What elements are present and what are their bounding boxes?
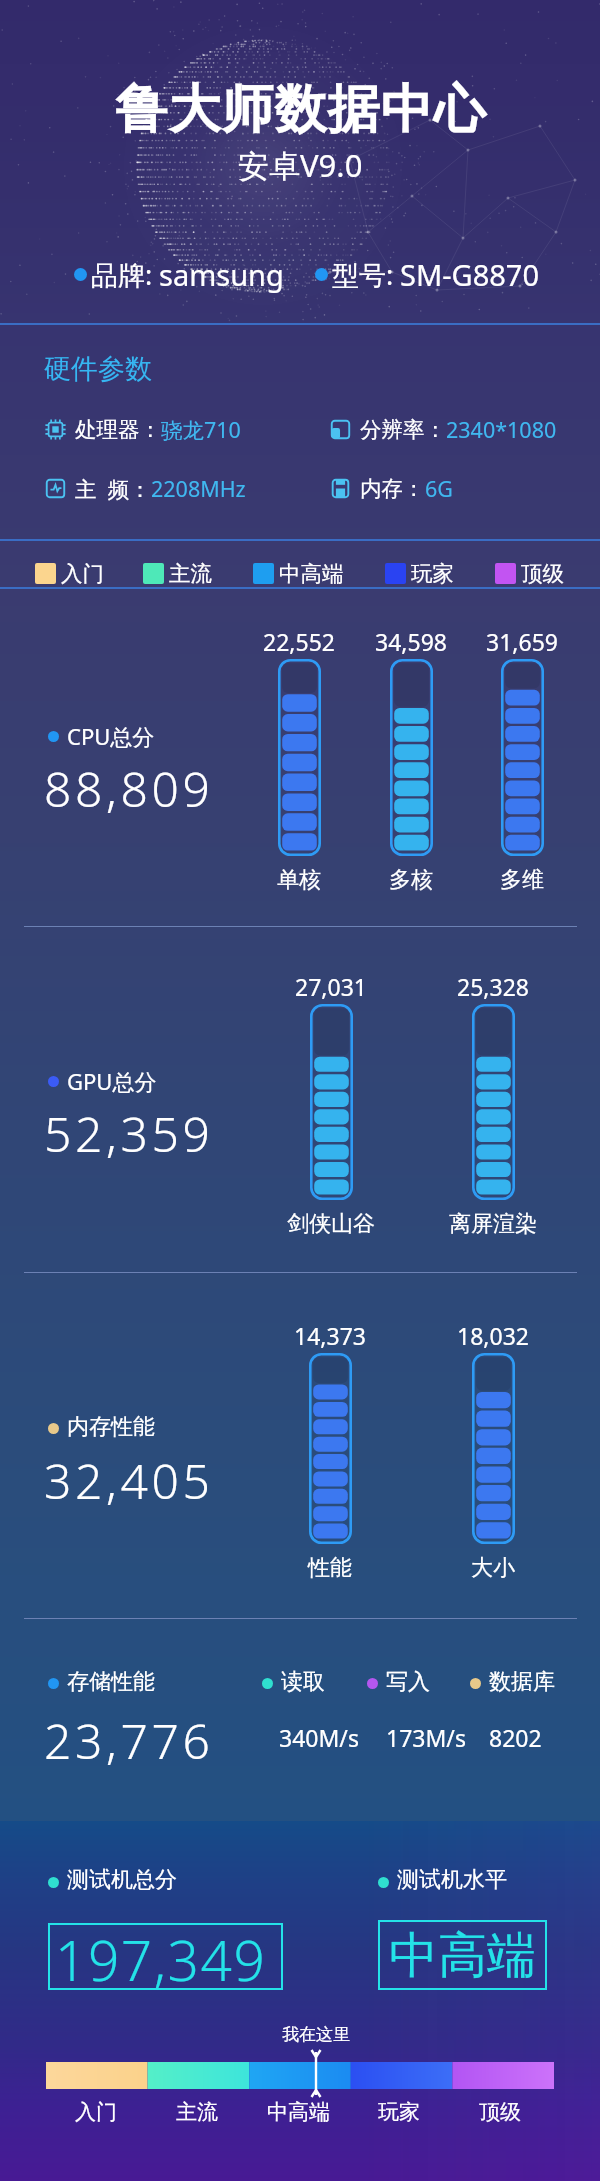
staticText: 中高端	[389, 1925, 536, 1987]
staticText: 主流	[169, 560, 212, 587]
staticText: 6G	[425, 474, 453, 503]
staticText: 340M/s	[279, 1722, 359, 1753]
staticText: 34,598	[375, 626, 447, 657]
staticText: 2208MHz	[151, 474, 246, 503]
staticText: 我在这里	[282, 2024, 350, 2045]
staticText: 测试机水平	[397, 1866, 507, 1894]
staticText: 8202	[489, 1722, 542, 1753]
staticText: 骁龙710	[161, 415, 241, 444]
staticText: 18,032	[457, 1320, 529, 1351]
staticText: CPU总分	[67, 721, 155, 751]
staticText: 品牌:	[91, 256, 153, 293]
staticText: 中高端	[279, 560, 344, 587]
staticText: 单核	[277, 866, 321, 894]
staticText: 剑侠山谷	[287, 1210, 375, 1238]
staticText: 197,349	[55, 1922, 267, 1989]
staticText: 14,373	[294, 1320, 366, 1351]
staticText: 硬件参数	[44, 352, 152, 386]
staticText: 主 频：	[75, 474, 151, 503]
staticText: 52,359	[44, 1101, 214, 1166]
staticText: 大小	[471, 1554, 515, 1582]
staticText: 测试机总分	[67, 1866, 177, 1894]
staticText: 22,552	[263, 626, 335, 657]
staticText: 分辨率：	[360, 416, 446, 443]
staticText: 玩家	[378, 2099, 420, 2125]
staticText: 数据库	[489, 1668, 555, 1696]
staticText: 32,405	[44, 1448, 214, 1513]
staticText: 多维	[500, 866, 544, 894]
staticText: 主流	[176, 2099, 218, 2125]
staticText: SM-G8870	[400, 255, 540, 294]
staticText: 多核	[389, 866, 433, 894]
staticText: samsung	[159, 255, 284, 294]
staticText: 25,328	[457, 971, 529, 1002]
staticText: 安卓V9.0	[238, 144, 363, 186]
staticText: 写入	[386, 1668, 430, 1696]
staticText: 读取	[281, 1668, 325, 1696]
staticText: GPU总分	[67, 1066, 157, 1096]
staticText: 入门	[61, 560, 104, 587]
staticText: 173M/s	[386, 1722, 466, 1753]
staticText: 鲁大师数据中心	[115, 77, 486, 143]
staticText: 31,659	[486, 626, 558, 657]
staticText: 27,031	[295, 971, 367, 1002]
staticText: 性能	[308, 1554, 352, 1582]
staticText: 处理器：	[75, 416, 161, 443]
staticText: 玩家	[411, 560, 454, 587]
staticText: 入门	[75, 2099, 117, 2125]
staticText: 存储性能	[67, 1668, 155, 1696]
staticText: 23,776	[44, 1708, 214, 1773]
staticText: 2340*1080	[446, 415, 557, 444]
staticText: 型号:	[332, 256, 394, 293]
staticText: 顶级	[479, 2099, 521, 2125]
staticText: 内存性能	[67, 1413, 155, 1441]
staticText: 顶级	[521, 560, 564, 587]
staticText: 88,809	[44, 756, 214, 821]
staticText: 内存：	[360, 475, 425, 502]
staticText: 离屏渲染	[449, 1210, 537, 1238]
staticText: 中高端	[267, 2099, 330, 2125]
